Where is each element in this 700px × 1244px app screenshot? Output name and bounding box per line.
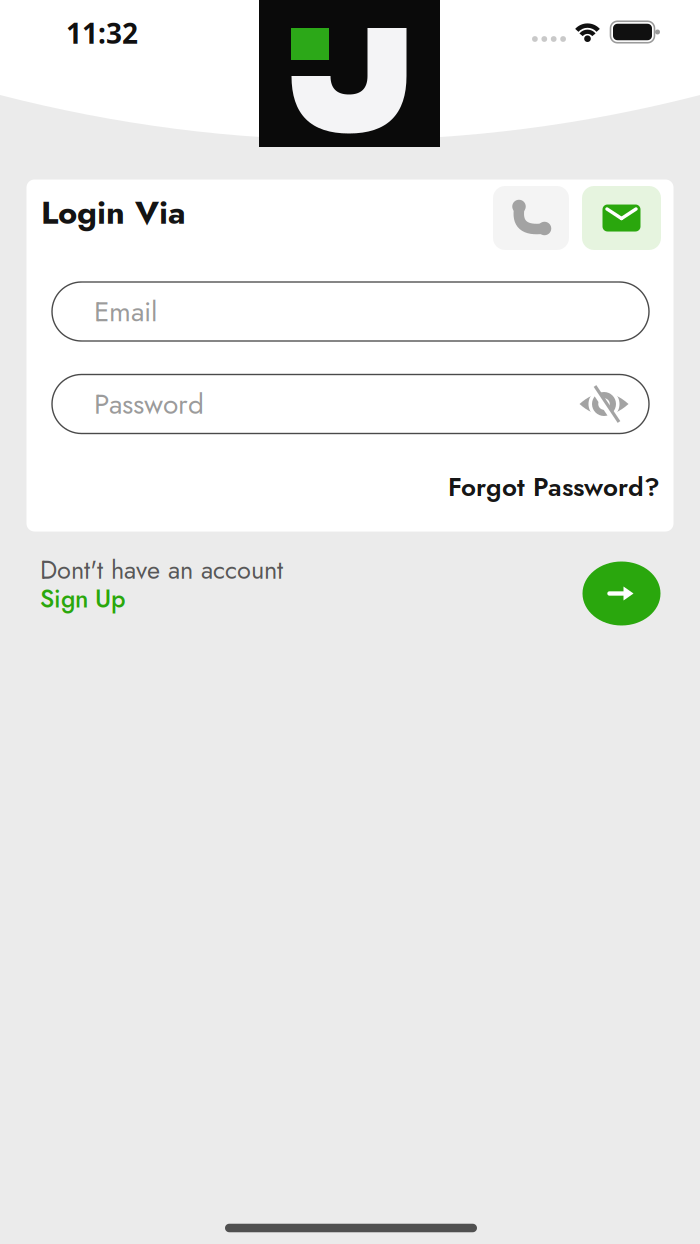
staticText: 11:32 xyxy=(66,14,138,52)
staticText: Email xyxy=(94,291,157,332)
button[interactable] xyxy=(582,186,661,250)
staticText: Login Via xyxy=(41,189,186,236)
button[interactable]: Email xyxy=(52,282,649,341)
button[interactable]: Sign Up xyxy=(40,581,126,617)
staticText: Forgot Password? xyxy=(448,468,660,506)
staticText: Password xyxy=(94,384,204,424)
button[interactable]: Forgot Password? xyxy=(448,468,660,506)
button[interactable] xyxy=(493,186,569,250)
staticText: Sign Up xyxy=(40,581,126,617)
button[interactable] xyxy=(582,561,660,625)
button[interactable]: Password xyxy=(52,374,649,433)
staticText: Dont't have an account xyxy=(40,552,283,588)
